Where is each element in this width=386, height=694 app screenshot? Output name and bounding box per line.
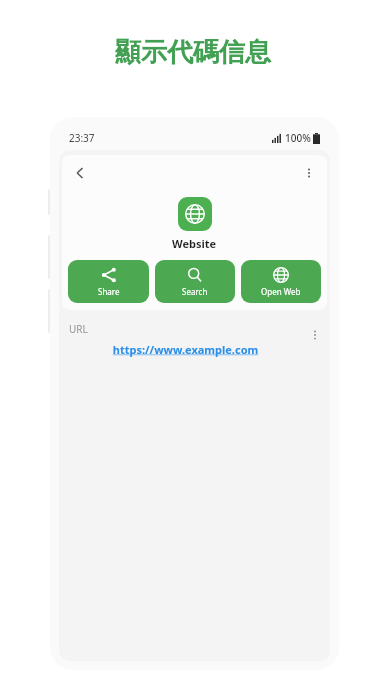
button[interactable]: Search [155, 260, 235, 303]
staticText: 23:37 [69, 131, 95, 145]
staticText: Website [172, 236, 217, 251]
button[interactable]: Back [62, 155, 98, 191]
button[interactable]: Share [68, 260, 149, 303]
button[interactable]: URL [59, 318, 330, 363]
staticText: https://www.example.com [69, 342, 302, 357]
button[interactable]: More options [291, 155, 327, 191]
staticText: 顯示代碼信息 [0, 36, 386, 69]
button[interactable]: Open Web [241, 260, 321, 303]
staticText: URL [69, 322, 88, 336]
button[interactable]: URL options [302, 322, 328, 348]
staticText: Open Web [261, 286, 301, 297]
staticText: Share [98, 286, 120, 297]
staticText: Search [182, 286, 208, 297]
staticText: 100% [285, 131, 311, 145]
